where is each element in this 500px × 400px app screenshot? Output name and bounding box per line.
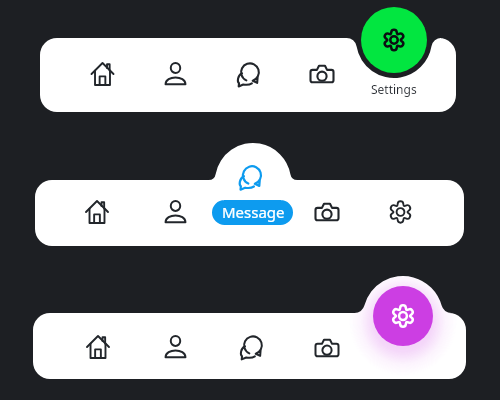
- button[interactable]: Settings: [355, 5, 433, 100]
- staticText: Settings: [371, 81, 417, 97]
- button[interactable]: Profile: [141, 180, 211, 246]
- button[interactable]: Messages: [186, 38, 259, 112]
- button[interactable]: Settings: [369, 180, 435, 246]
- button[interactable]: Camera: [259, 38, 332, 112]
- button[interactable]: Settings: [370, 283, 438, 351]
- button[interactable]: Home: [33, 313, 103, 379]
- staticText: Message: [222, 202, 285, 222]
- button[interactable]: Message: [205, 140, 301, 226]
- button[interactable]: Home: [40, 38, 113, 112]
- button[interactable]: Profile: [113, 38, 186, 112]
- button[interactable]: Messages: [218, 313, 288, 379]
- button[interactable]: Profile: [140, 313, 210, 379]
- button[interactable]: Camera: [294, 180, 360, 246]
- button[interactable]: Home: [35, 180, 105, 246]
- button[interactable]: Camera: [294, 313, 360, 379]
